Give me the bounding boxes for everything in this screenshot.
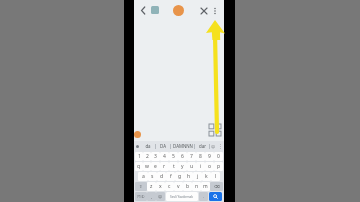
staticText: b — [186, 183, 190, 190]
button[interactable]: More options — [209, 5, 220, 16]
staticText: q — [137, 163, 141, 170]
button[interactable]: a — [138, 172, 148, 181]
button[interactable]: 5 — [169, 152, 178, 161]
button[interactable]: DAMNNN — [171, 141, 194, 151]
button[interactable]: j — [193, 172, 202, 181]
button[interactable]: Emoji — [210, 141, 217, 151]
staticText: da — [145, 143, 151, 149]
button[interactable]: m — [201, 182, 210, 191]
button[interactable]: Back — [138, 5, 149, 16]
button[interactable]: h — [184, 172, 193, 181]
staticText: dar — [199, 143, 206, 149]
button[interactable]: Search — [209, 192, 222, 201]
button[interactable]: Sesli Yazdırmak — [166, 192, 198, 201]
staticText: e — [154, 163, 157, 170]
button[interactable]: o — [205, 162, 214, 171]
staticText: ⇧ — [139, 184, 143, 189]
staticText: DA — [160, 143, 166, 149]
staticText: w — [145, 163, 149, 170]
staticText: f — [170, 173, 172, 180]
button[interactable]: q — [135, 162, 143, 171]
button[interactable]: Close — [198, 5, 209, 16]
button[interactable]: 7 — [187, 152, 196, 161]
button[interactable]: l — [211, 172, 220, 181]
button[interactable]: Period — [199, 192, 208, 201]
button[interactable]: v — [174, 182, 183, 191]
button[interactable]: 1 — [135, 152, 143, 161]
button[interactable]: DA — [156, 141, 170, 151]
staticText: ☺ — [211, 144, 216, 149]
button[interactable]: y — [178, 162, 187, 171]
button[interactable]: 3 — [151, 152, 160, 161]
button[interactable]: x — [156, 182, 165, 191]
staticText: p — [217, 163, 221, 170]
button[interactable]: Scan code — [209, 124, 221, 136]
button[interactable]: Shift — [135, 182, 147, 191]
staticText: o — [208, 163, 212, 170]
staticText: Sesli Yazdırmak — [170, 195, 194, 199]
button[interactable]: g — [175, 172, 184, 181]
staticText: k — [205, 173, 208, 180]
button[interactable]: t — [169, 162, 178, 171]
staticText: h — [187, 173, 191, 180]
staticText: 2 — [146, 153, 149, 160]
staticText: . — [203, 194, 205, 199]
staticText: i — [200, 163, 202, 170]
button[interactable]: k — [202, 172, 211, 181]
button[interactable]: n — [192, 182, 201, 191]
button[interactable]: 6 — [178, 152, 187, 161]
button[interactable]: b — [183, 182, 192, 191]
button[interactable]: w — [143, 162, 151, 171]
button[interactable]: u — [187, 162, 196, 171]
staticText: ⋮ — [218, 143, 223, 149]
button[interactable]: Backspace — [210, 182, 223, 191]
staticText: 5 — [172, 153, 175, 160]
staticText: 0 — [217, 153, 220, 160]
staticText: 7 — [190, 153, 193, 160]
staticText: d — [160, 173, 164, 180]
button[interactable]: e — [151, 162, 160, 171]
button[interactable]: r — [160, 162, 169, 171]
staticText: z — [150, 183, 153, 190]
staticText: l — [215, 173, 217, 180]
button[interactable]: 0 — [214, 152, 223, 161]
button[interactable]: z — [147, 182, 156, 191]
staticText: m — [203, 183, 208, 190]
staticText: ⌫ — [214, 184, 220, 189]
button[interactable]: Emoji — [156, 192, 165, 201]
staticText: 6 — [181, 153, 184, 160]
staticText: , — [151, 194, 153, 199]
staticText: g — [178, 173, 182, 180]
staticText: x — [159, 183, 162, 190]
button[interactable]: p — [214, 162, 223, 171]
button[interactable]: Settings — [217, 141, 224, 151]
button[interactable]: Comma — [147, 192, 156, 201]
button[interactable]: Profile — [173, 5, 184, 16]
button[interactable]: c — [165, 182, 174, 191]
button[interactable]: 8 — [196, 152, 205, 161]
staticText: 4 — [163, 153, 166, 160]
staticText: s — [151, 173, 154, 180]
button[interactable]: 4 — [160, 152, 169, 161]
staticText: ?1① — [137, 194, 145, 199]
button[interactable]: Symbols — [135, 192, 147, 201]
button[interactable]: 2 — [143, 152, 151, 161]
staticText: 1 — [138, 153, 141, 160]
staticText: DAMNNN — [173, 143, 193, 149]
button[interactable]: da — [140, 141, 155, 151]
button[interactable]: f — [166, 172, 175, 181]
button[interactable]: s — [148, 172, 157, 181]
staticText: 8 — [199, 153, 202, 160]
staticText: u — [190, 163, 194, 170]
button[interactable]: 9 — [205, 152, 214, 161]
staticText: a — [142, 173, 145, 180]
button[interactable]: dar — [195, 141, 209, 151]
staticText: ☺ — [158, 194, 163, 199]
staticText: n — [195, 183, 199, 190]
button[interactable]: Voice input — [134, 141, 140, 151]
staticText: j — [197, 173, 199, 180]
button[interactable]: i — [196, 162, 205, 171]
staticText: 9 — [208, 153, 211, 160]
button[interactable]: d — [157, 172, 166, 181]
button[interactable]: Logo — [151, 6, 159, 14]
